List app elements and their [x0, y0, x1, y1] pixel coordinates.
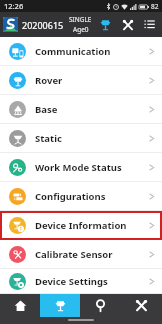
staticText: Device Information	[35, 219, 127, 232]
staticText: Work Mode Status	[35, 161, 122, 174]
staticText: Static	[35, 132, 62, 145]
staticText: Rover	[35, 74, 63, 87]
button[interactable]: Communication	[0, 37, 162, 66]
staticText: Calibrate Sensor	[35, 248, 113, 261]
button[interactable]: Menu	[141, 16, 158, 33]
button[interactable]: Device	[40, 294, 80, 317]
button[interactable]: Tools	[121, 294, 162, 317]
button[interactable]: Location	[80, 294, 121, 317]
staticText: Age0	[73, 25, 89, 34]
button[interactable]: Satellite status	[97, 16, 114, 33]
button[interactable]: Home	[0, 294, 40, 317]
button[interactable]: Work Mode Status	[0, 153, 162, 182]
button[interactable]: Device Settings	[0, 269, 162, 294]
staticText: 82	[151, 2, 159, 11]
button[interactable]: Device Information	[0, 211, 162, 240]
button[interactable]: Rover	[0, 66, 162, 95]
button[interactable]: Calibrate Sensor	[0, 240, 162, 269]
staticText: Configurations	[35, 190, 106, 203]
staticText: SINGLE	[69, 15, 92, 24]
button[interactable]: Tools	[119, 16, 136, 33]
staticText: Base	[35, 103, 58, 116]
staticText: Device Settings	[35, 275, 108, 288]
button[interactable]: Static	[0, 124, 162, 153]
staticText: Communication	[35, 45, 111, 58]
staticText: 20200615	[22, 19, 64, 31]
button[interactable]: App logo	[3, 17, 18, 32]
staticText: 12:26	[4, 1, 24, 11]
button[interactable]: Base	[0, 95, 162, 124]
button[interactable]: Configurations	[0, 182, 162, 211]
